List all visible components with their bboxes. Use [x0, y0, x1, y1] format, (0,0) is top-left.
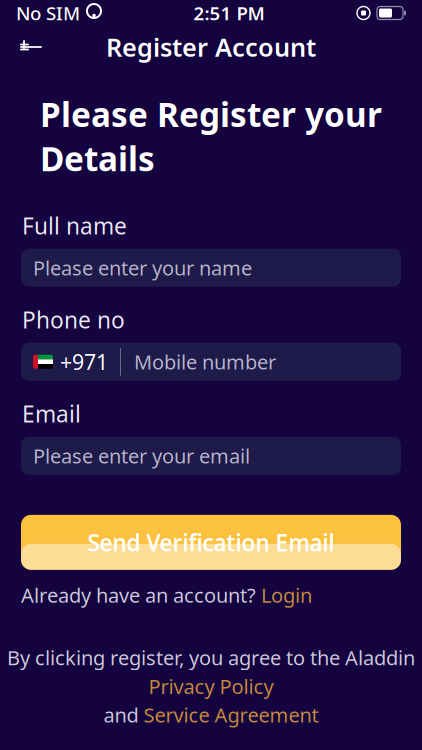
button[interactable]: +971 [21, 343, 401, 381]
staticText: No SIM [16, 1, 80, 25]
staticText: Phone no [22, 305, 125, 335]
staticText: Send Verification Email [87, 527, 334, 557]
button[interactable]: Please enter your name [21, 249, 401, 287]
button[interactable]: Please enter your email [21, 437, 401, 475]
staticText: Please Register your Details [40, 92, 382, 180]
staticText: 2:51 PM [193, 1, 264, 25]
staticText: By clicking register, you agree to the A… [7, 644, 415, 671]
button[interactable]: Already have an account? [0, 570, 422, 608]
button[interactable]: Send Verification Email [21, 515, 401, 570]
staticText: Email [22, 399, 81, 429]
staticText: Already have an account? [21, 582, 256, 608]
staticText: Register Account [106, 30, 316, 64]
staticText: Service Agreement [143, 701, 318, 728]
staticText: Login [261, 582, 312, 608]
staticText: +971 [60, 348, 108, 376]
staticText: and [103, 701, 138, 728]
staticText: Please enter your name [33, 254, 252, 281]
staticText: Send Verification Email [87, 527, 334, 557]
button[interactable]: Privacy Policy [148, 673, 273, 699]
staticText: Privacy Policy [148, 673, 273, 699]
button[interactable]: Service Agreement [143, 701, 318, 728]
staticText: Full name [22, 210, 127, 241]
button[interactable]: Back [8, 27, 54, 67]
staticText: Mobile number [134, 348, 276, 375]
staticText: Please enter your email [33, 443, 250, 469]
